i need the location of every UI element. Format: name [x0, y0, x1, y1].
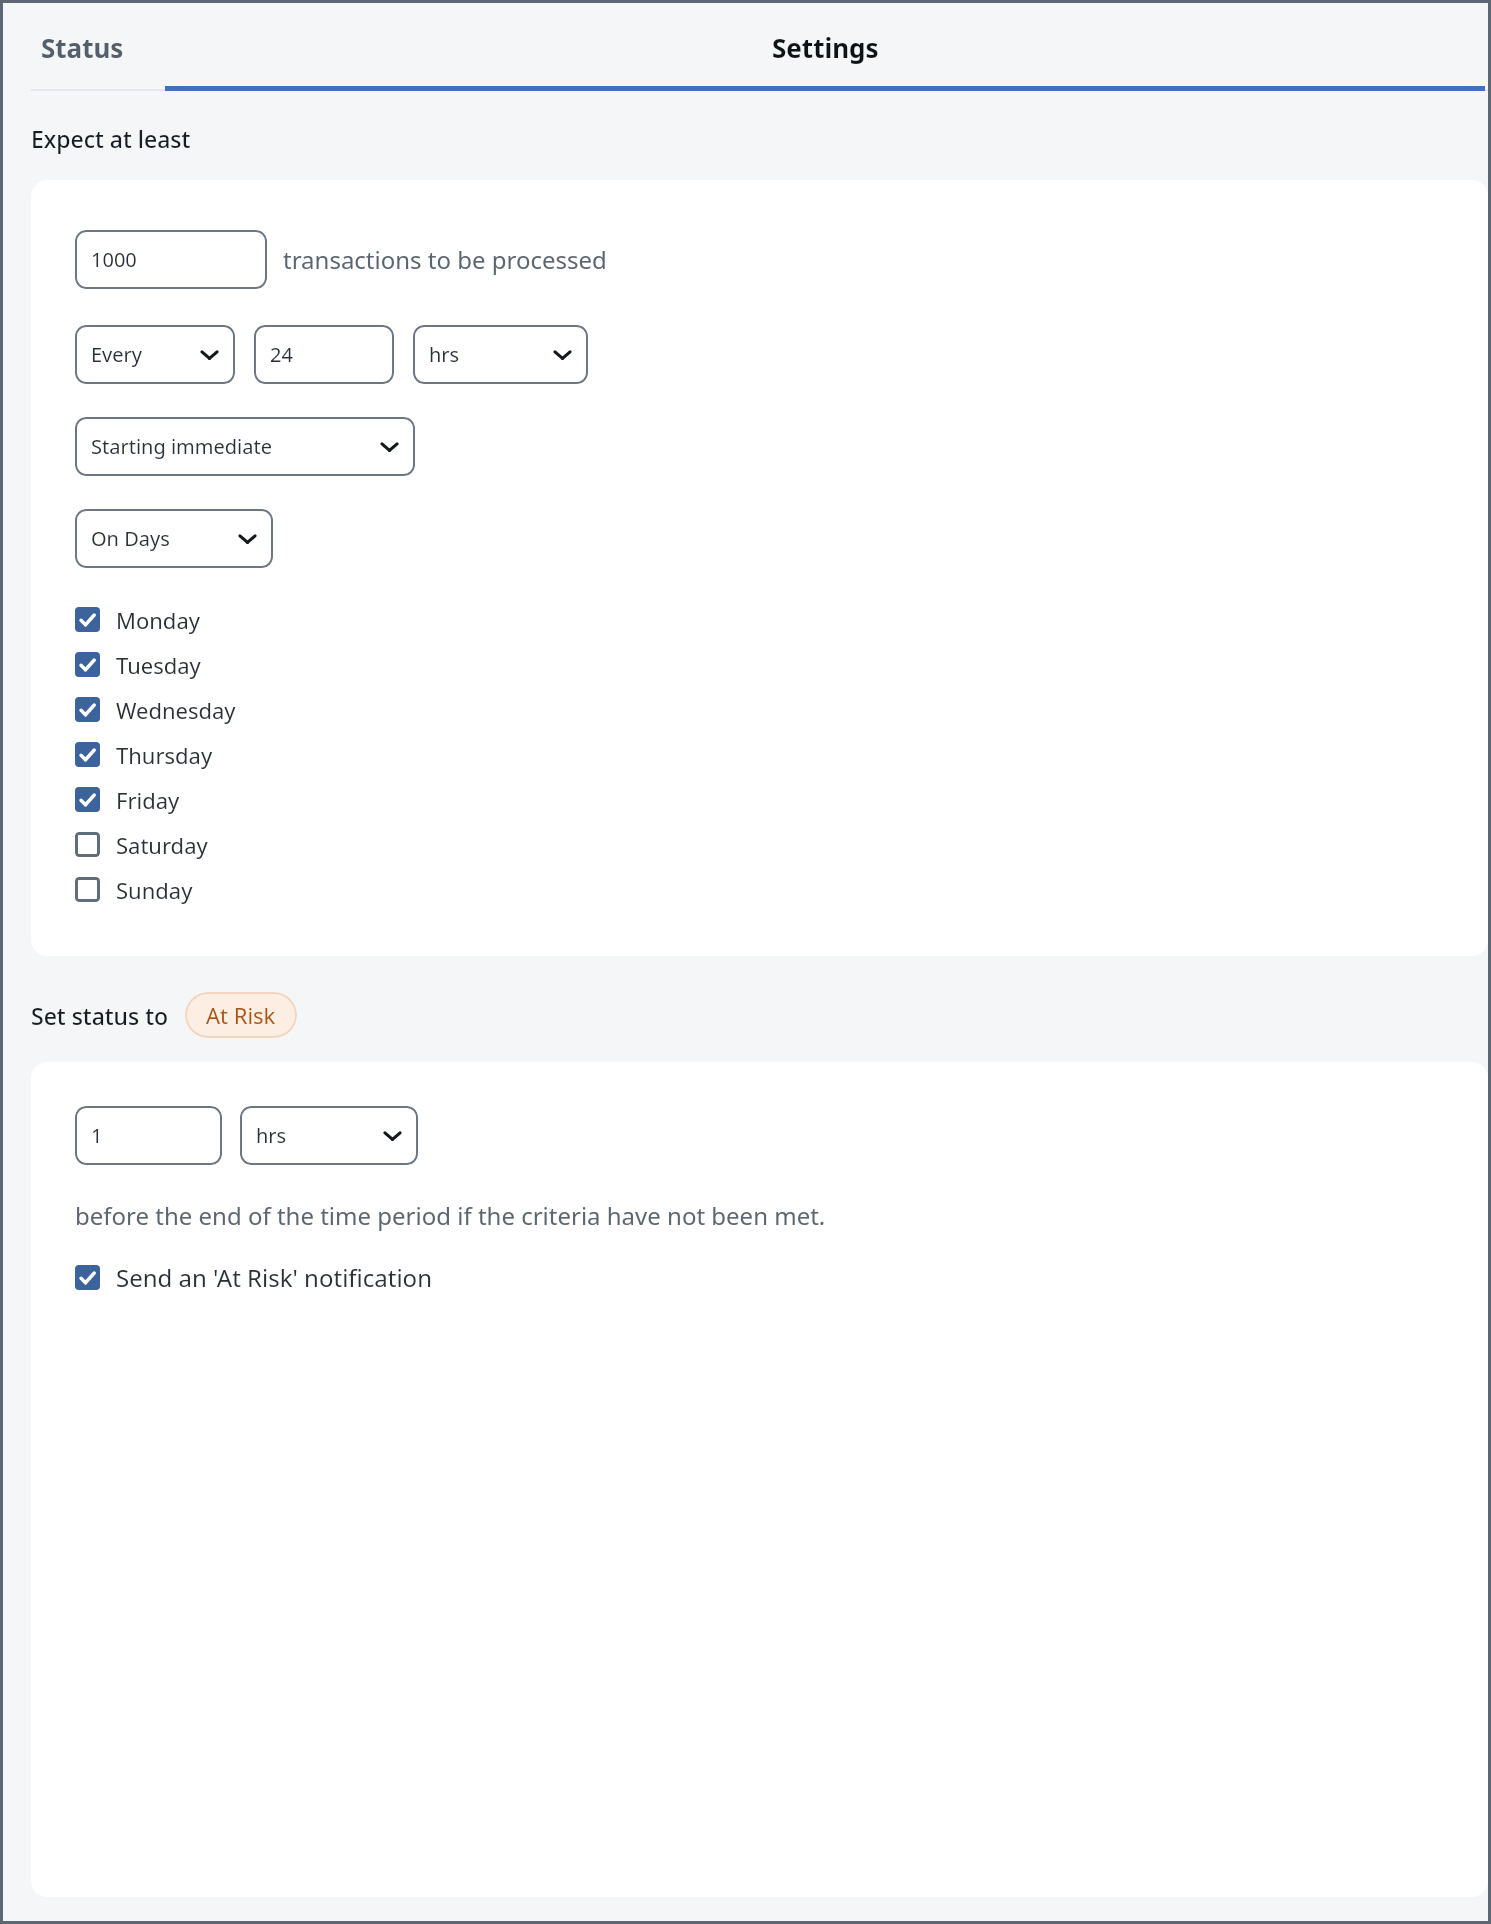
- staticText: 1000: [91, 246, 137, 273]
- button[interactable]: 1: [75, 1106, 222, 1165]
- button[interactable]: Monday: [75, 597, 1488, 642]
- button[interactable]: Wednesday: [75, 687, 1488, 732]
- button[interactable]: 1000: [75, 230, 267, 289]
- staticText: Send an 'At Risk' notification: [116, 1261, 432, 1294]
- button[interactable]: Saturday: [75, 822, 1488, 867]
- button[interactable]: Settings: [162, 3, 1488, 91]
- button[interactable]: Every: [75, 325, 235, 384]
- button[interactable]: Starting immediate: [75, 417, 415, 476]
- staticText: before the end of the time period if the…: [75, 1199, 826, 1232]
- staticText: At Risk: [206, 1000, 276, 1030]
- staticText: transactions to be processed: [283, 243, 607, 276]
- staticText: 1: [91, 1122, 103, 1149]
- button[interactable]: hrs: [240, 1106, 418, 1165]
- button[interactable]: Sunday: [75, 867, 1488, 912]
- button[interactable]: Thursday: [75, 732, 1488, 777]
- staticText: On Days: [91, 525, 170, 552]
- button[interactable]: Friday: [75, 777, 1488, 822]
- staticText: Wednesday: [116, 695, 236, 725]
- staticText: Friday: [116, 785, 180, 815]
- button[interactable]: Send an 'At Risk' notification: [75, 1254, 1488, 1300]
- staticText: hrs: [429, 341, 460, 368]
- staticText: 24: [270, 341, 293, 368]
- staticText: Monday: [116, 605, 200, 635]
- staticText: Sunday: [116, 875, 193, 905]
- button[interactable]: At Risk: [185, 992, 297, 1038]
- staticText: Thursday: [116, 740, 213, 770]
- button[interactable]: hrs: [413, 325, 588, 384]
- button[interactable]: On Days: [75, 509, 273, 568]
- staticText: Every: [91, 341, 143, 368]
- staticText: Tuesday: [116, 650, 201, 680]
- button[interactable]: Status: [3, 3, 162, 91]
- button[interactable]: 24: [254, 325, 394, 384]
- staticText: Status: [41, 30, 124, 65]
- staticText: Saturday: [116, 830, 208, 860]
- staticText: Starting immediate: [91, 433, 272, 460]
- button[interactable]: Tuesday: [75, 642, 1488, 687]
- staticText: Set status to: [31, 1000, 169, 1031]
- staticText: hrs: [256, 1122, 287, 1149]
- staticText: Settings: [772, 30, 879, 65]
- staticText: Expect at least: [31, 123, 191, 154]
